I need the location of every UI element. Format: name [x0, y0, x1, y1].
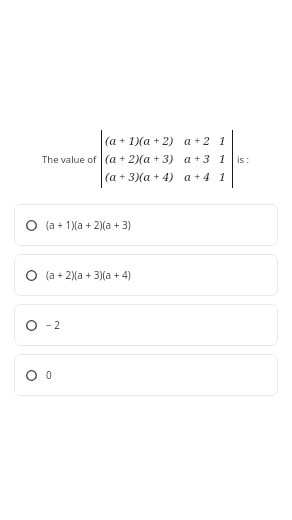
button[interactable]: (a + 1)(a + 2)(a + 3): [14, 204, 278, 246]
staticText: 0: [46, 368, 52, 382]
staticText: The value of: [42, 153, 97, 166]
staticText: (a + 1)(a + 2)(a + 3): [46, 218, 131, 232]
button[interactable]: (a + 2)(a + 3)(a + 4): [14, 254, 278, 296]
staticText: − 2: [46, 318, 61, 332]
staticText: (a + 3)(a + 4): [105, 169, 174, 185]
button[interactable]: 0: [14, 354, 278, 396]
staticText: (a + 2)(a + 3)(a + 4): [46, 268, 131, 282]
staticText: a + 2: [184, 133, 210, 149]
staticText: a + 4: [184, 169, 210, 185]
staticText: is :: [237, 153, 250, 166]
staticText: (a + 1)(a + 2): [105, 133, 174, 149]
button[interactable]: − 2: [14, 304, 278, 346]
staticText: (a + 2)(a + 3): [105, 151, 174, 167]
staticText: 1: [219, 169, 226, 185]
staticText: 1: [219, 151, 226, 167]
staticText: a + 3: [184, 151, 210, 167]
staticText: 1: [219, 133, 226, 149]
